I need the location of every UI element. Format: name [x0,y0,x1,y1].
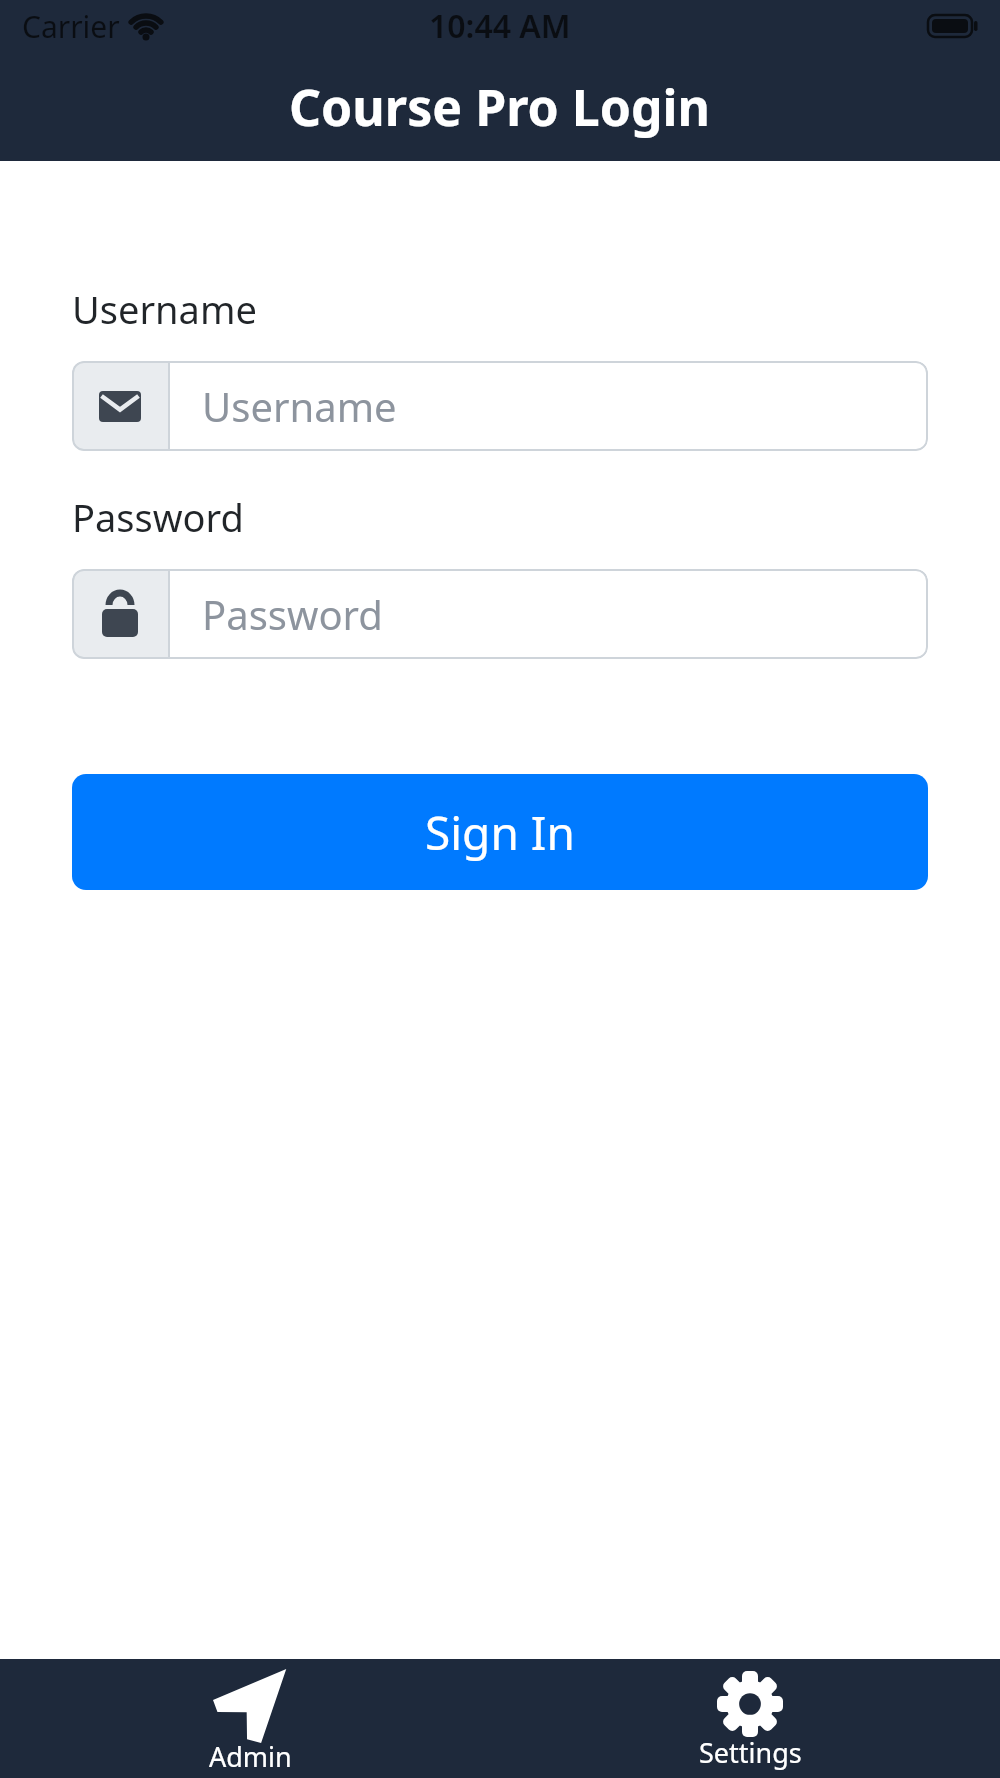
staticText: Username [202,379,397,433]
staticText: Admin [209,1738,292,1773]
staticText: Course Pro Login [289,73,711,141]
button[interactable]: Password [72,569,928,659]
staticText: Settings [699,1734,802,1771]
staticText: Sign In [425,801,575,864]
button[interactable]: Sign In [72,774,928,890]
button[interactable]: Settings [500,1659,1000,1778]
staticText: Username [72,283,257,335]
staticText: Password [202,587,383,641]
button[interactable]: Admin [0,1659,500,1778]
staticText: Password [72,491,244,543]
staticText: 10:44 AM [429,4,571,48]
button[interactable]: Username [72,361,928,451]
staticText: Carrier [22,6,120,47]
